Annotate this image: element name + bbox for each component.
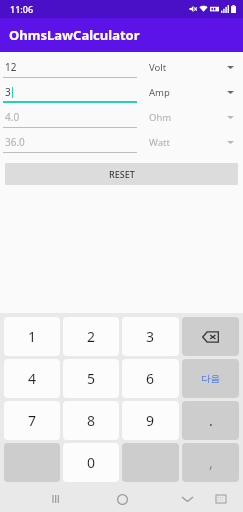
- staticText: Watt: [149, 136, 170, 149]
- staticText: 11:06: [10, 3, 34, 15]
- button[interactable]: 2: [63, 317, 119, 356]
- button[interactable]: 36.0: [0, 131, 143, 156]
- staticText: 다음: [201, 373, 220, 385]
- button[interactable]: Ohm: [143, 106, 243, 131]
- staticText: 1: [28, 327, 37, 346]
- button[interactable]: 다음: [182, 359, 239, 398]
- staticText: 6: [146, 369, 155, 388]
- staticText: 36.0: [5, 135, 25, 149]
- staticText: 12: [5, 60, 17, 74]
- staticText: 5: [87, 369, 96, 388]
- button[interactable]: 6: [122, 359, 179, 398]
- staticText: Amp: [149, 86, 170, 99]
- staticText: .: [209, 411, 213, 430]
- button[interactable]: Watt: [143, 131, 243, 156]
- staticText: Volt: [149, 61, 167, 74]
- staticText: OhmsLawCalculator: [9, 26, 140, 44]
- staticText: 0: [87, 453, 96, 472]
- button[interactable]: .: [182, 401, 239, 440]
- button[interactable]: ,: [182, 443, 239, 482]
- button[interactable]: Switch keyboard: [211, 489, 231, 509]
- button[interactable]: Volt: [143, 56, 243, 81]
- button[interactable]: 3: [122, 317, 179, 356]
- button[interactable]: Home: [111, 488, 133, 510]
- staticText: 9: [146, 411, 155, 430]
- button[interactable]: Recents: [46, 489, 66, 509]
- staticText: Ohm: [149, 111, 172, 124]
- button[interactable]: 5: [63, 359, 119, 398]
- button[interactable]: 4.0: [0, 106, 143, 131]
- staticText: RESET: [109, 168, 135, 180]
- button[interactable]: RESET: [5, 163, 238, 185]
- button[interactable]: 9: [122, 401, 179, 440]
- button[interactable]: 8: [63, 401, 119, 440]
- staticText: ,: [209, 453, 213, 472]
- staticText: 3: [5, 85, 11, 99]
- button[interactable]: Hide keyboard: [177, 489, 197, 509]
- staticText: 3: [146, 327, 155, 346]
- staticText: 4: [28, 369, 37, 388]
- button[interactable]: Amp: [143, 81, 243, 106]
- staticText: 4.0: [5, 110, 20, 124]
- button[interactable]: 12: [0, 56, 143, 81]
- button[interactable]: 4: [4, 359, 60, 398]
- staticText: 8: [87, 411, 96, 430]
- button[interactable]: 7: [4, 401, 60, 440]
- button[interactable]: 3: [0, 81, 143, 106]
- staticText: 2: [87, 327, 96, 346]
- button[interactable]: Backspace: [182, 317, 239, 356]
- button[interactable]: 1: [4, 317, 60, 356]
- staticText: 7: [28, 411, 37, 430]
- button[interactable]: 0: [63, 443, 119, 482]
